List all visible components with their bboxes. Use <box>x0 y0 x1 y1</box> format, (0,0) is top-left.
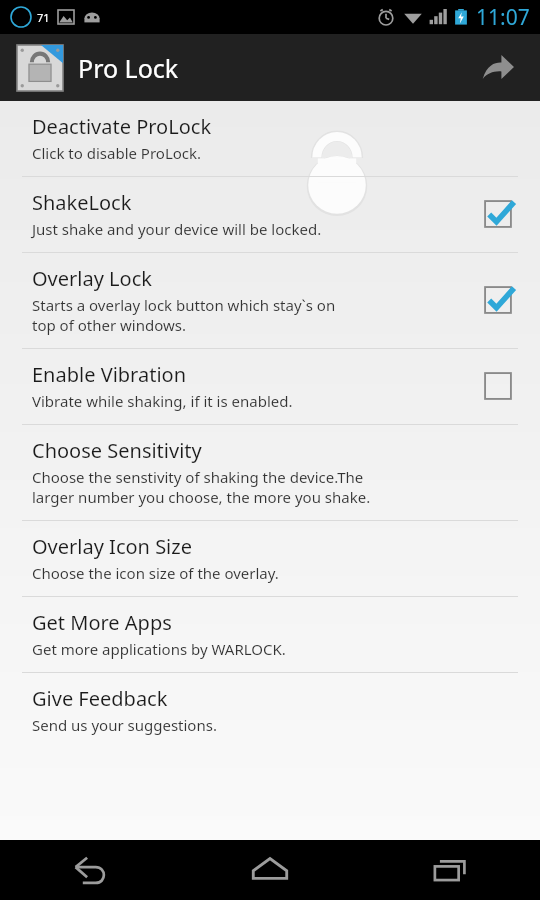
button[interactable]: Enabled <box>476 278 520 322</box>
staticText: Get More Apps <box>32 609 172 636</box>
staticText: Choose the senstivity of shaking the dev… <box>32 467 364 487</box>
button[interactable]: Overlay Icon Size <box>0 521 540 596</box>
staticText: Choose Sensitivity <box>32 437 202 464</box>
staticText: Give Feedback <box>32 685 168 712</box>
staticText: Click to disable ProLock. <box>32 143 202 163</box>
button[interactable]: Home <box>180 840 360 900</box>
button[interactable]: Give Feedback <box>0 673 540 748</box>
button[interactable]: Enable Vibration <box>0 349 540 424</box>
button[interactable]: Disabled <box>476 364 520 408</box>
button[interactable]: Recent apps <box>360 840 540 900</box>
button[interactable]: Get More Apps <box>0 597 540 672</box>
staticText: 11:07 <box>476 3 530 32</box>
button[interactable]: Share <box>472 42 524 94</box>
button[interactable]: ShakeLock <box>0 177 540 252</box>
staticText: ShakeLock <box>32 189 132 216</box>
staticText: Get more applications by WARLOCK. <box>32 639 286 659</box>
staticText: Starts a overlay lock button which stay`… <box>32 295 336 315</box>
button[interactable]: Choose Sensitivity <box>0 425 540 520</box>
staticText: Enable Vibration <box>32 361 187 388</box>
staticText: larger number you choose, the more you s… <box>32 487 371 507</box>
button[interactable]: Overlay Lock <box>0 253 540 348</box>
button[interactable]: Enabled <box>476 192 520 236</box>
staticText: Overlay Icon Size <box>32 533 192 560</box>
button[interactable]: Back <box>0 840 180 900</box>
staticText: Choose the icon size of the overlay. <box>32 563 279 583</box>
staticText: Overlay Lock <box>32 265 152 292</box>
staticText: Just shake and your device will be locke… <box>32 219 322 239</box>
staticText: Pro Lock <box>78 51 179 85</box>
staticText: Vibrate while shaking, if it is enabled. <box>32 391 293 411</box>
staticText: Send us your suggestions. <box>32 715 217 735</box>
button[interactable]: Deactivate ProLock <box>0 101 540 176</box>
staticText: top of other windows. <box>32 315 186 335</box>
staticText: Deactivate ProLock <box>32 113 212 140</box>
staticText: 71 <box>37 10 50 25</box>
